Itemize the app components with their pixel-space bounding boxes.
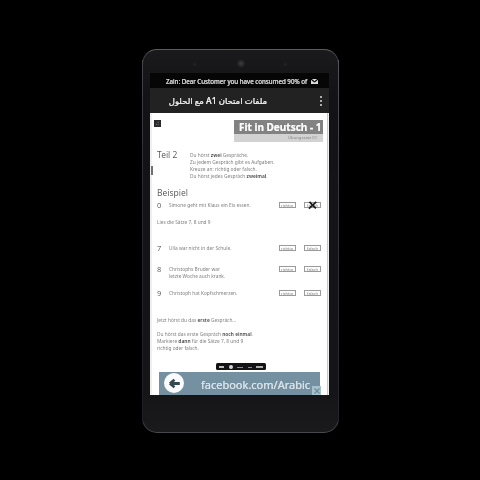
staticText: richtig bbox=[281, 291, 294, 296]
button[interactable]: Back bbox=[164, 373, 184, 393]
staticText: Du hörst jedes Gespräch zweimal. bbox=[190, 173, 268, 180]
staticText: Zu jedem Gespräch gibt es Aufgaben. bbox=[190, 159, 275, 166]
staticText: richtig bbox=[281, 203, 294, 208]
staticText: richtig bbox=[281, 246, 294, 251]
staticText: falsch bbox=[307, 291, 318, 296]
staticText: falsch bbox=[307, 203, 318, 208]
staticText: Christoph hat Kopfschmerzen. bbox=[169, 290, 238, 297]
staticText: richtig bbox=[281, 267, 294, 272]
staticText: richtig oder falsch. bbox=[157, 345, 199, 352]
staticText: Christophs Bruder war bbox=[169, 266, 220, 273]
staticText: ملفات امتحان A1 مع الحلول bbox=[168, 95, 267, 107]
staticText: 0 bbox=[157, 200, 162, 208]
staticText: Fit in Deutsch - 1 bbox=[239, 120, 322, 134]
staticText: letzte Woche auch krank. bbox=[169, 273, 226, 279]
staticText: Du hörst zwei Gespräche. bbox=[190, 152, 249, 159]
staticText: Kreuze an: richtig oder falsch. bbox=[190, 166, 257, 173]
staticText: 7 bbox=[157, 243, 162, 251]
staticText: Jetzt hörst du das erste Gespräch... bbox=[157, 317, 237, 324]
staticText: Du hörst das erste Gespräch noch einmal. bbox=[157, 331, 253, 338]
staticText: Übungssatz 01 bbox=[288, 135, 318, 141]
staticText: falsch bbox=[307, 246, 318, 251]
button[interactable]: More options bbox=[313, 90, 329, 112]
staticText: Simone geht mit Klaus ein Eis essen. bbox=[169, 202, 251, 209]
staticText: Markiere dann für die Sätze 7, 8 und 9 bbox=[157, 338, 244, 345]
staticText: Lies die Sätze 7, 8 und 9 bbox=[157, 219, 211, 226]
button[interactable]: Zoom controls bbox=[216, 363, 266, 370]
staticText: Teil 2 bbox=[157, 149, 178, 161]
staticText: Ulla war nicht in der Schule. bbox=[169, 245, 232, 252]
staticText: Beispiel bbox=[157, 187, 188, 199]
button[interactable]: Close bbox=[312, 386, 321, 395]
staticText: falsch bbox=[307, 267, 318, 272]
staticText: 8 bbox=[157, 264, 162, 274]
staticText: Zain: Dear Customer you have consumed 90… bbox=[166, 77, 308, 85]
staticText: 9 bbox=[157, 288, 162, 296]
staticText: facebook.com/Arabic bbox=[201, 377, 311, 392]
